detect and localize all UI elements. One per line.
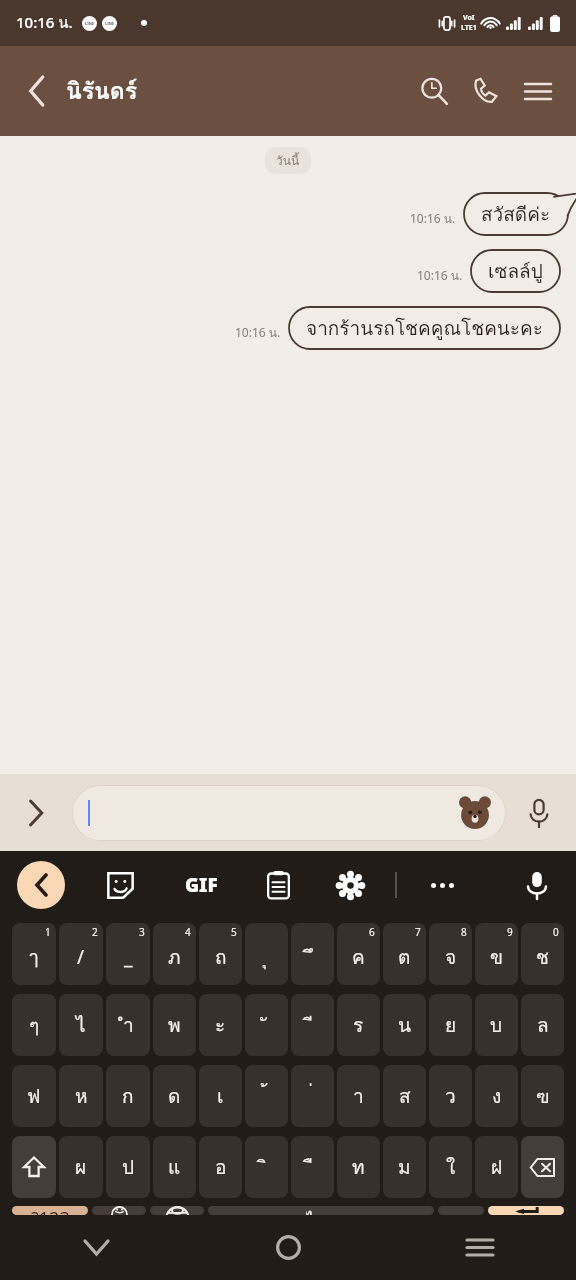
staticText: ป xyxy=(122,1152,135,1182)
button[interactable]: 3 xyxy=(106,923,150,985)
button[interactable]: สวัสดีค่ะ xyxy=(464,193,568,235)
button[interactable]: ื xyxy=(291,1136,334,1198)
button[interactable]: Emoji xyxy=(92,1206,146,1215)
button[interactable]: น xyxy=(383,994,426,1056)
staticText: ช xyxy=(536,942,549,972)
staticText: , xyxy=(117,1206,122,1207)
staticText: 2 xyxy=(92,925,98,939)
staticText: GIF xyxy=(185,872,218,898)
button[interactable]: 9 xyxy=(475,923,518,985)
button[interactable]: ไทย xyxy=(208,1206,434,1215)
staticText: ด xyxy=(168,1081,181,1111)
staticText: ร xyxy=(353,1010,364,1040)
button[interactable]: Backspace xyxy=(521,1136,564,1198)
staticText: ๆ xyxy=(29,1010,40,1040)
staticText: ท xyxy=(352,1152,365,1182)
staticText: 7 xyxy=(415,925,421,939)
staticText: ำ xyxy=(123,1010,134,1040)
button[interactable]: ๆ xyxy=(12,994,56,1056)
button[interactable]: อ xyxy=(199,1136,242,1198)
button[interactable]: Voice input xyxy=(512,860,562,910)
button[interactable]: Voice message xyxy=(514,788,564,838)
button[interactable]: Search xyxy=(408,65,460,117)
button[interactable]: ะ xyxy=(199,994,242,1056)
button[interactable]: ไ xyxy=(59,994,103,1056)
button[interactable]: 0 xyxy=(521,923,564,985)
staticText: พ xyxy=(168,1010,181,1040)
button[interactable]: จากร้านรถโชคคูณโชคนะคะ xyxy=(289,307,560,349)
button[interactable]: ี xyxy=(291,994,334,1056)
button[interactable]: ุ xyxy=(245,923,288,985)
button[interactable]: ด xyxy=(153,1065,196,1127)
button[interactable]: Stickers xyxy=(72,785,506,841)
staticText: ก xyxy=(122,1081,134,1111)
staticText: / xyxy=(77,944,85,970)
button[interactable]: ย xyxy=(429,994,472,1056)
button[interactable]: ใ xyxy=(429,1136,472,1198)
button[interactable]: ึ xyxy=(291,923,334,985)
button[interactable]: Menu xyxy=(512,65,564,117)
button[interactable]: 8 xyxy=(429,923,472,985)
staticText: 5 xyxy=(231,925,237,939)
button[interactable]: 7 xyxy=(383,923,426,985)
button[interactable]: Shift xyxy=(12,1136,56,1198)
button[interactable]: Back xyxy=(12,66,62,116)
button[interactable]: เ xyxy=(199,1065,242,1127)
button[interactable]: ั xyxy=(245,994,288,1056)
button[interactable]: ร xyxy=(337,994,380,1056)
staticText: LINE xyxy=(85,21,95,26)
button[interactable]: Home xyxy=(192,1215,384,1280)
button[interactable]: Change language xyxy=(150,1206,204,1215)
button[interactable]: ล xyxy=(521,994,564,1056)
button[interactable]: More xyxy=(420,863,464,907)
button[interactable]: Call xyxy=(460,65,512,117)
button[interactable]: ม xyxy=(383,1136,426,1198)
button[interactable]: ป xyxy=(106,1136,150,1198)
button[interactable]: 5 xyxy=(199,923,242,985)
button[interactable]: ำ xyxy=(106,994,150,1056)
staticText: ภ xyxy=(168,942,181,972)
button[interactable]: 6 xyxy=(337,923,380,985)
staticText: ห xyxy=(75,1081,88,1111)
button[interactable]: ?123 xyxy=(12,1206,88,1215)
button[interactable]: Recent apps xyxy=(384,1215,576,1280)
button[interactable]: Clipboard xyxy=(256,863,300,907)
staticText: LINE xyxy=(105,21,115,26)
button[interactable]: พ xyxy=(153,994,196,1056)
staticText: ฝ xyxy=(491,1152,503,1182)
button[interactable]: ฃ xyxy=(521,1065,564,1127)
button[interactable]: า xyxy=(337,1065,380,1127)
button[interactable]: ห xyxy=(59,1065,103,1127)
button[interactable]: ส xyxy=(383,1065,426,1127)
button[interactable]: 1 xyxy=(12,923,56,985)
button[interactable]: Enter xyxy=(488,1206,564,1215)
button[interactable]: ง xyxy=(475,1065,518,1127)
button[interactable]: แ xyxy=(153,1136,196,1198)
button[interactable]: Back xyxy=(17,861,65,909)
staticText: สวัสดีค่ะ xyxy=(481,199,551,229)
button[interactable]: ้ xyxy=(245,1065,288,1127)
button[interactable]: 2 xyxy=(59,923,103,985)
staticText: จ xyxy=(445,942,457,972)
button[interactable]: ฟ xyxy=(12,1065,56,1127)
button[interactable]: Sticker xyxy=(98,863,142,907)
button[interactable]: เซลล์ปู xyxy=(471,250,560,292)
button[interactable]: ท xyxy=(337,1136,380,1198)
staticText: 10:16 น. xyxy=(417,266,463,285)
button[interactable]: ผ xyxy=(59,1136,103,1198)
button[interactable]: Hide keyboard xyxy=(0,1215,192,1280)
button[interactable]: . xyxy=(438,1206,484,1215)
button[interactable]: GIF xyxy=(174,863,228,907)
button[interactable]: ว xyxy=(429,1065,472,1127)
button[interactable]: ิ xyxy=(245,1136,288,1198)
button[interactable]: บ xyxy=(475,994,518,1056)
staticText: ส xyxy=(399,1081,411,1111)
button[interactable]: 4 xyxy=(153,923,196,985)
button[interactable]: ก xyxy=(106,1065,150,1127)
staticText: 10:16 น. xyxy=(410,209,456,228)
button[interactable]: ่ xyxy=(291,1065,334,1127)
button[interactable]: Stickers xyxy=(456,794,494,832)
button[interactable]: More options xyxy=(12,789,60,837)
button[interactable]: ฝ xyxy=(475,1136,518,1198)
button[interactable]: Settings xyxy=(328,863,372,907)
